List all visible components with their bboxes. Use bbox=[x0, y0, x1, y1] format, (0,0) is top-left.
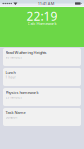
staticText: 25 minutes bbox=[5, 96, 21, 99]
staticText: 1 hour bbox=[5, 76, 15, 79]
staticText: Calc Homework bbox=[27, 21, 56, 26]
staticText: 40 minutes bbox=[5, 56, 21, 59]
button[interactable]: Read Wuthering Heights bbox=[3, 48, 81, 66]
staticText: Lunch bbox=[5, 70, 15, 75]
staticText: Duration bbox=[5, 116, 17, 119]
staticText: 11:41 AM bbox=[38, 1, 55, 6]
staticText: Read Wuthering Heights bbox=[5, 50, 46, 55]
button[interactable]: Physics homework bbox=[3, 88, 81, 106]
button[interactable]: Task Name bbox=[3, 108, 81, 126]
staticText: Physics homework bbox=[5, 90, 38, 95]
staticText: 22:19 bbox=[26, 8, 57, 24]
staticText: Task Name bbox=[5, 110, 25, 115]
button[interactable]: Lunch bbox=[3, 68, 81, 86]
